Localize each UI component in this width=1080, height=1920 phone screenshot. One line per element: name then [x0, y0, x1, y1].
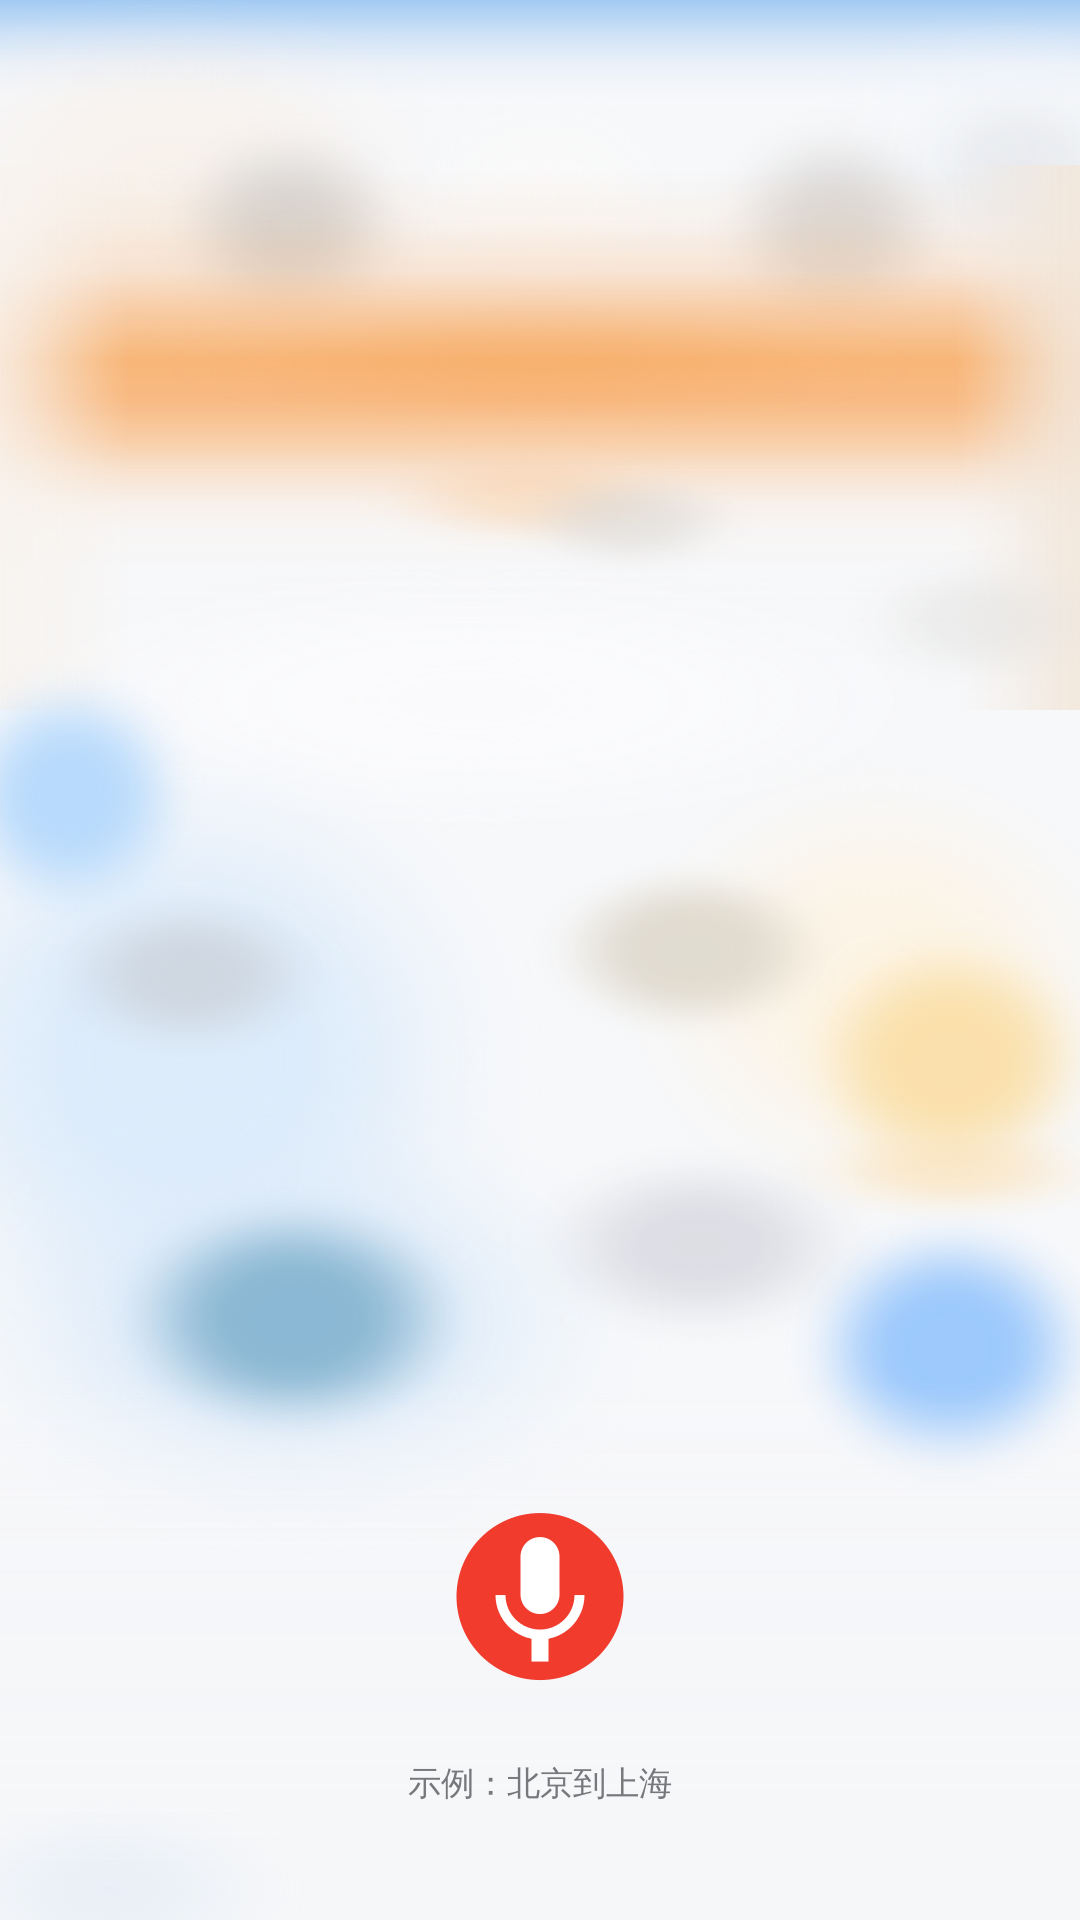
button[interactable]: Start voice input	[456, 1513, 623, 1680]
staticText: 示例：北京到上海	[408, 1763, 672, 1804]
